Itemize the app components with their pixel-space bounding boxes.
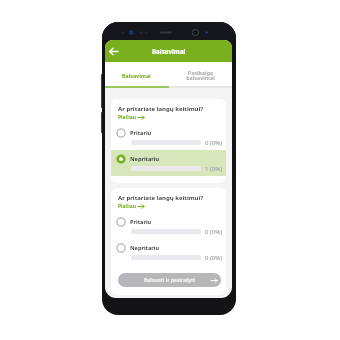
button[interactable]: Plačiau [118,203,144,210]
staticText: Ar pritariate langų keitimui? [118,194,204,202]
button[interactable]: Nepritariu [111,239,226,265]
staticText: Plačiau [118,203,136,210]
staticText: 0 (0%) [205,228,223,236]
button[interactable]: Pritariu [111,213,226,239]
button[interactable]: Pritariu [111,124,226,150]
staticText: 1 (0%) [205,165,223,173]
button[interactable]: Balsavimai [105,62,168,88]
staticText: Plačiau [118,114,136,121]
staticText: Balsavimai [122,72,151,79]
staticText: Balsuoti ir pasirašyti [144,277,196,284]
staticText: Pritariu [130,129,152,137]
button[interactable]: Balsuoti ir pasirašyti [118,273,221,287]
staticText: Pasibaigę balsavimai [186,69,215,81]
staticText: 0 (0%) [205,254,223,262]
staticText: Balsavimai [152,47,186,55]
button[interactable]: Back [106,44,120,58]
staticText: Nepritariu [130,155,160,163]
button[interactable]: Nepritariu [111,150,226,176]
staticText: Ar pritariate langų keitimui? [118,105,204,113]
staticText: 0 (0%) [205,139,223,147]
button[interactable]: Pasibaigę balsavimai [168,62,232,88]
staticText: Pritariu [130,218,152,226]
staticText: Nepritariu [130,244,160,252]
button[interactable]: Plačiau [118,114,144,121]
